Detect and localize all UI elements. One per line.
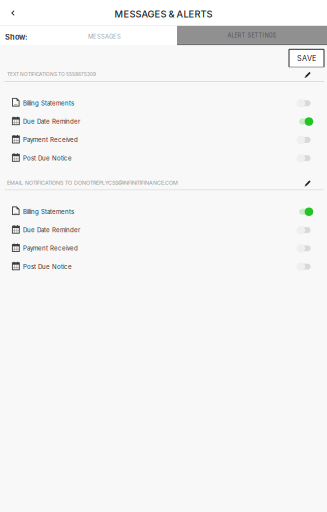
button[interactable]: Edit: [299, 178, 317, 187]
staticText: Payment Received: [23, 245, 78, 252]
staticText: TEXT NOTIFICATIONS TO 5558675309: [7, 71, 96, 77]
staticText: EMAIL NOTIFICATIONS TO DONOTREPLYCSS@INF…: [7, 180, 178, 186]
button[interactable]: Billing Statements: [0, 94, 327, 112]
button[interactable]: Due Date Reminder: [0, 112, 327, 131]
staticText: Due Date Reminder: [23, 226, 80, 234]
button[interactable]: Post Due Notice: [0, 149, 327, 167]
staticText: Billing Statements: [23, 99, 74, 107]
button[interactable]: Post Due Notice: [0, 257, 327, 276]
staticText: Post Due Notice: [23, 263, 72, 270]
button[interactable]: Edit: [299, 70, 317, 79]
button[interactable]: Payment Received: [0, 131, 327, 149]
button[interactable]: Payment Received: [0, 239, 327, 257]
staticText: MESSAGES & ALERTS: [114, 8, 212, 20]
staticText: Post Due Notice: [23, 154, 72, 162]
staticText: Billing Statements: [23, 208, 74, 215]
button[interactable]: Billing Statements: [0, 203, 327, 221]
staticText: Show:: [5, 32, 27, 41]
staticText: MESSAGES: [88, 33, 121, 40]
staticText: Payment Received: [23, 136, 78, 143]
button[interactable]: ALERT SETTINGS: [177, 26, 327, 45]
button[interactable]: SAVE: [289, 49, 324, 67]
button[interactable]: Back: [0, 1, 25, 24]
staticText: Due Date Reminder: [23, 118, 80, 125]
staticText: SAVE: [297, 54, 316, 63]
staticText: ALERT SETTINGS: [227, 32, 276, 39]
button[interactable]: Due Date Reminder: [0, 221, 327, 239]
button[interactable]: MESSAGES: [32, 26, 177, 45]
